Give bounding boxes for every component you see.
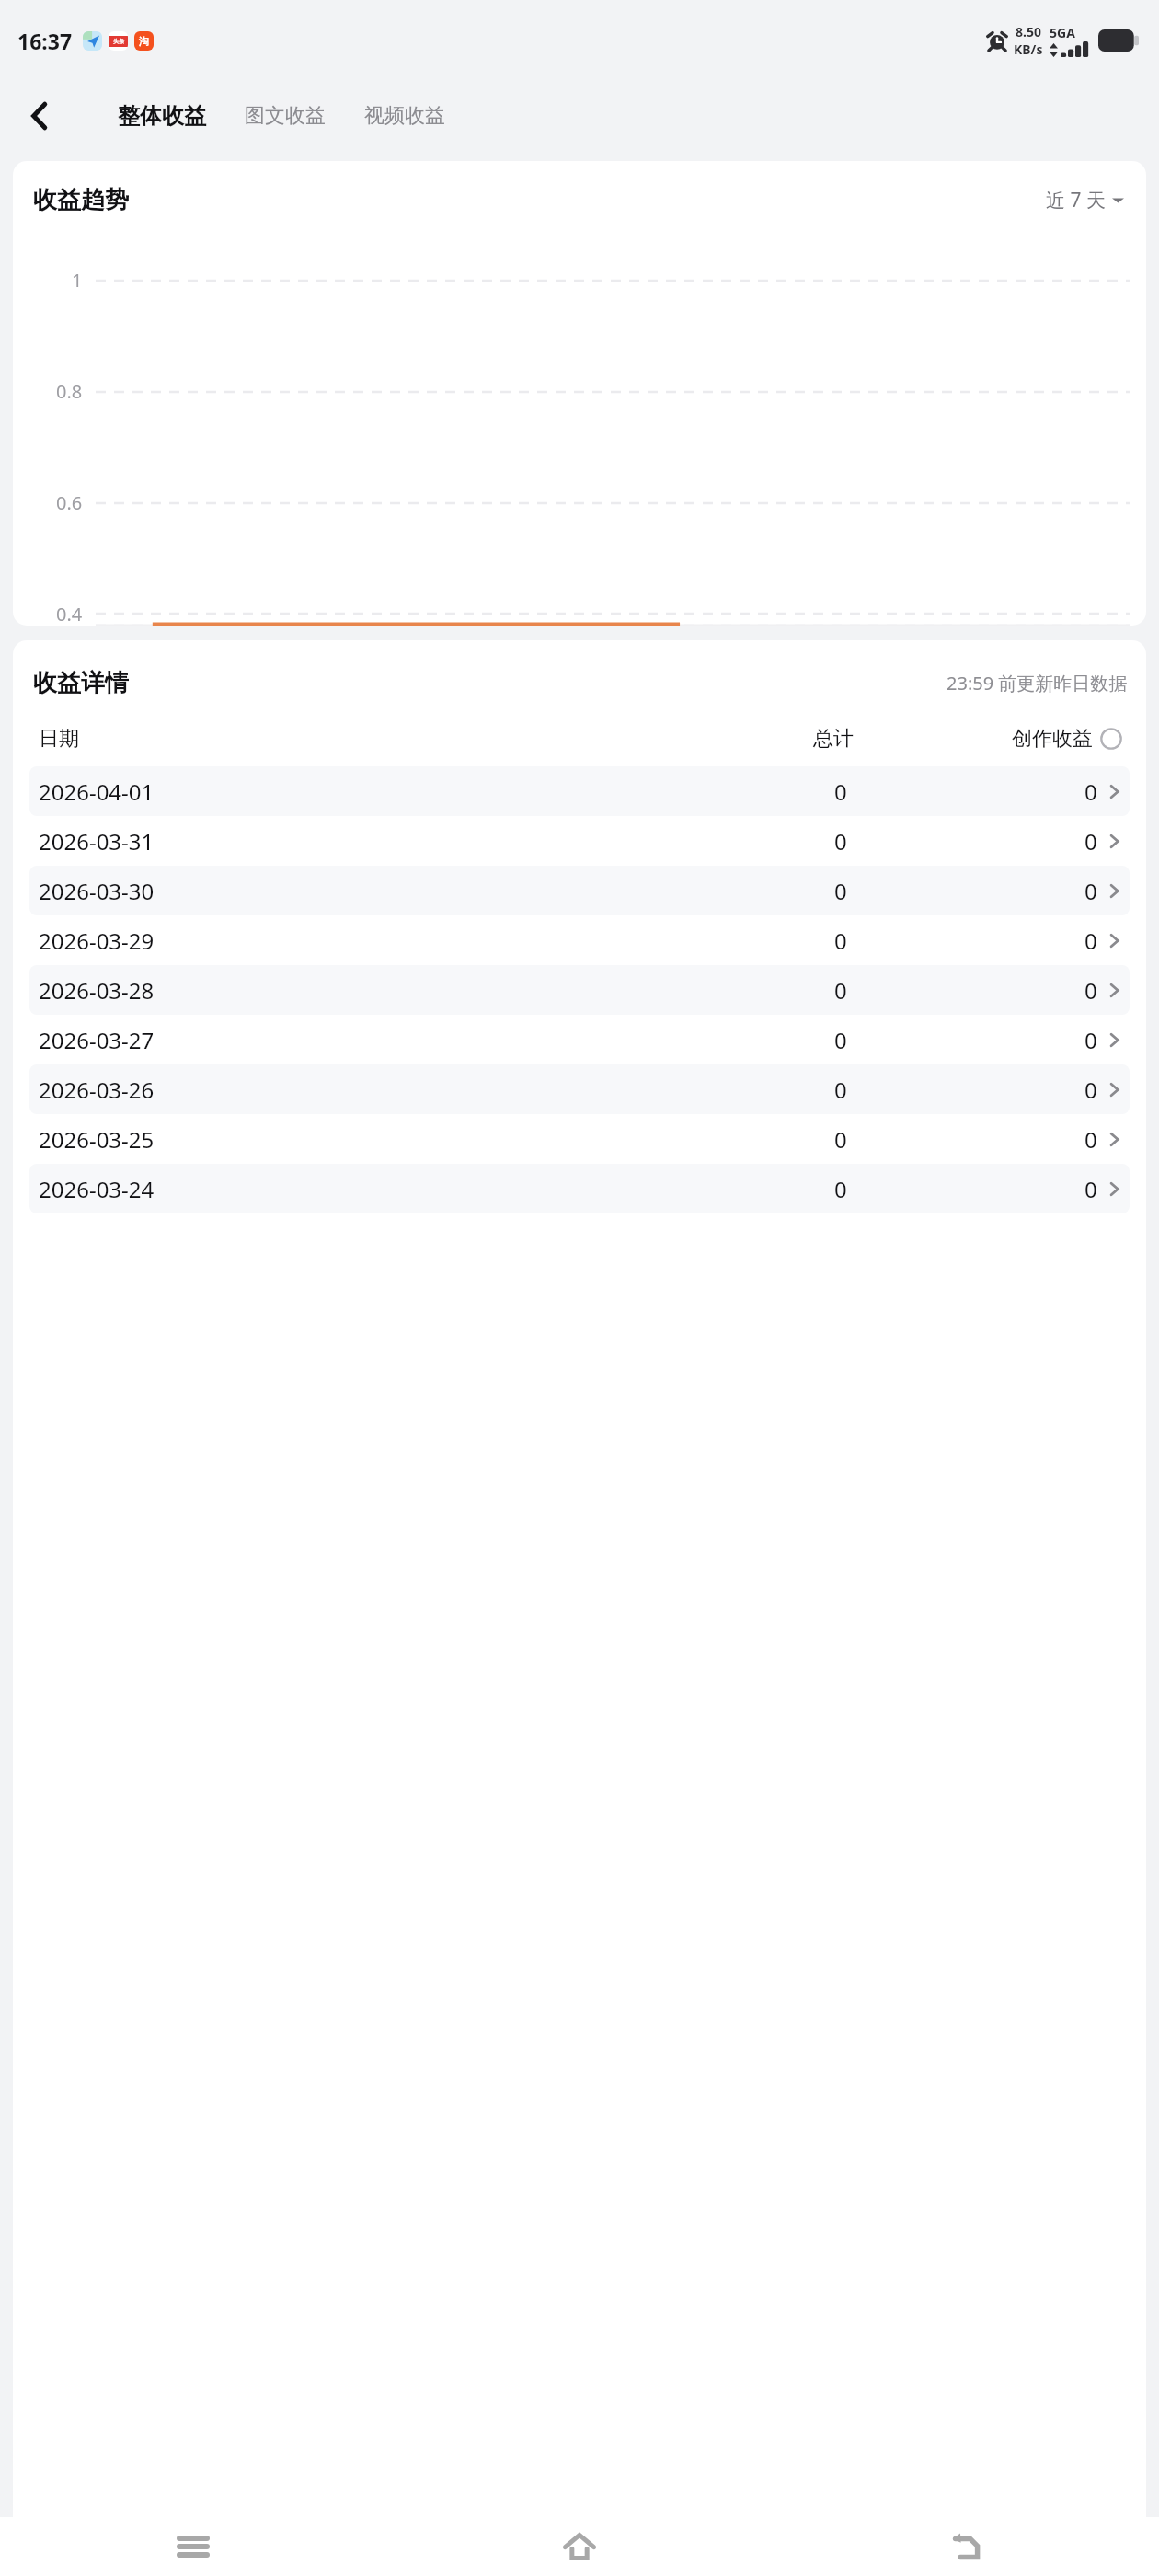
staticText: 2026-03-29 [39,926,155,956]
staticText: 0 [834,1124,847,1155]
button[interactable]: 2026-03-27 [29,1015,1130,1064]
staticText: 收益详情 [33,668,129,698]
staticText: 2026-03-28 [39,975,155,1006]
button[interactable]: Home [386,2517,773,2576]
button[interactable]: 2026-03-30 [29,866,1130,915]
button[interactable]: Recent apps [0,2517,386,2576]
staticText: 23:59 前更新昨日数据 [947,671,1128,696]
staticText: 0.8 [56,379,83,404]
staticText: 0.6 [56,490,83,515]
staticText: 0 [1084,1174,1097,1204]
button[interactable]: 整体收益 [107,95,217,137]
staticText: 0 [1084,1025,1097,1055]
staticText: 0 [1084,776,1097,807]
staticText: 0 [834,1174,847,1204]
staticText: 16:37 [17,27,73,55]
staticText: 2026-03-24 [39,1174,155,1204]
staticText: 2026-03-25 [39,1124,155,1155]
staticText: 0 [834,776,847,807]
staticText: 0 [834,826,847,857]
button[interactable]: 近 7 天 [1042,183,1128,217]
button[interactable]: 2026-04-01 [29,766,1130,816]
button[interactable]: 2026-03-28 [29,965,1130,1015]
staticText: 0 [834,1075,847,1105]
staticText: 淘 [139,35,149,48]
button[interactable]: Back [13,89,66,143]
staticText: 2026-04-01 [39,776,155,807]
staticText: 1 [72,268,83,293]
button[interactable]: 2026-03-31 [29,816,1130,866]
staticText: 图文收益 [245,103,326,129]
staticText: 0 [1084,826,1097,857]
staticText: 2026-03-31 [39,826,155,857]
staticText: 创作收益 [1012,726,1093,752]
staticText: 2026-03-26 [39,1075,155,1105]
button[interactable]: 2026-03-29 [29,915,1130,965]
staticText: 近 7 天 [1046,187,1106,213]
button[interactable]: 图文收益 [234,96,337,136]
staticText: 头条 [113,38,124,45]
button[interactable]: Back [773,2517,1159,2576]
button[interactable]: 2026-03-26 [29,1064,1130,1114]
button[interactable]: 视频收益 [353,96,456,136]
staticText: 8.50 [1016,23,1041,40]
staticText: KB/s [1014,40,1043,58]
staticText: 总计 [813,726,854,752]
staticText: 2026-03-27 [39,1025,155,1055]
staticText: 0 [1084,975,1097,1006]
staticText: 0 [834,1025,847,1055]
staticText: 整体收益 [118,102,206,130]
staticText: 0 [834,876,847,906]
staticText: 2026-03-30 [39,876,155,906]
staticText: 0 [834,926,847,956]
staticText: 0.4 [56,602,83,626]
staticText: 日期 [39,726,79,752]
staticText: 收益趋势 [33,185,129,215]
button[interactable]: 2026-03-24 [29,1164,1130,1213]
staticText: 5GA [1050,24,1075,41]
staticText: 0 [1084,926,1097,956]
staticText: 视频收益 [364,103,445,129]
staticText: 0 [1084,1075,1097,1105]
staticText: 0 [834,975,847,1006]
staticText: 0 [1084,1124,1097,1155]
staticText: 0 [1084,876,1097,906]
button[interactable]: 2026-03-25 [29,1114,1130,1164]
